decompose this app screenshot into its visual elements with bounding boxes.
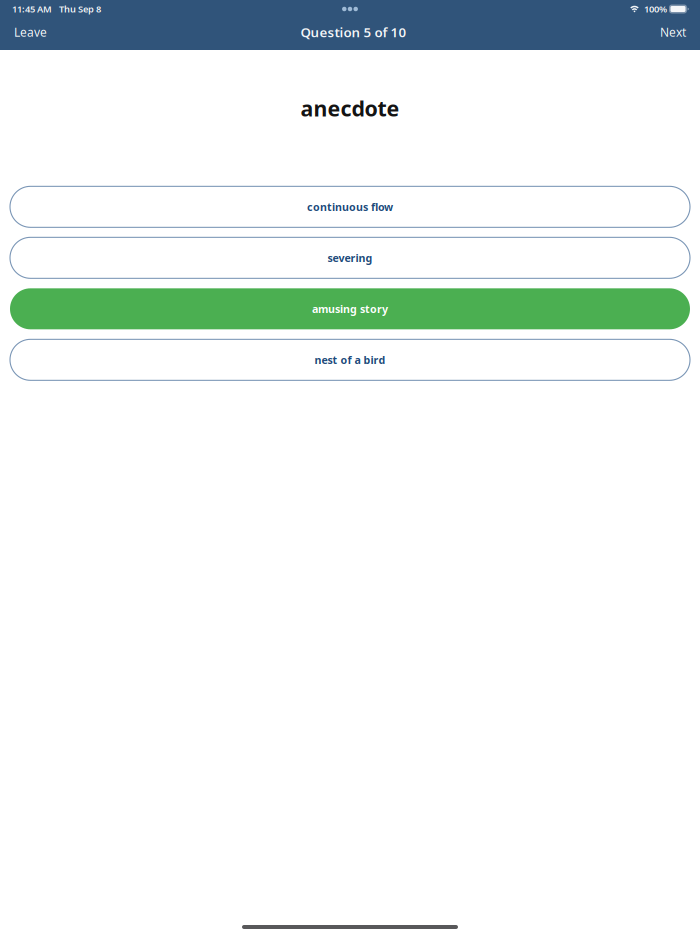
staticText: Thu Sep 8	[59, 3, 101, 15]
staticText: severing	[327, 251, 372, 265]
staticText: Next	[660, 24, 686, 40]
staticText: continuous flow	[307, 200, 393, 214]
staticText: Question 5 of 10	[300, 23, 406, 41]
button[interactable]: Next	[646, 18, 700, 46]
staticText: 100%	[644, 3, 667, 15]
staticText: anecdote	[300, 94, 399, 122]
button[interactable]: continuous flow	[10, 186, 690, 227]
staticText: 11:45 AM	[12, 3, 52, 15]
button[interactable]: nest of a bird	[10, 339, 690, 380]
staticText: nest of a bird	[314, 353, 385, 367]
button[interactable]: amusing story	[10, 288, 690, 329]
staticText: amusing story	[312, 302, 388, 316]
button[interactable]: severing	[10, 237, 690, 278]
staticText: Leave	[14, 24, 47, 40]
button[interactable]: Leave	[0, 18, 61, 46]
